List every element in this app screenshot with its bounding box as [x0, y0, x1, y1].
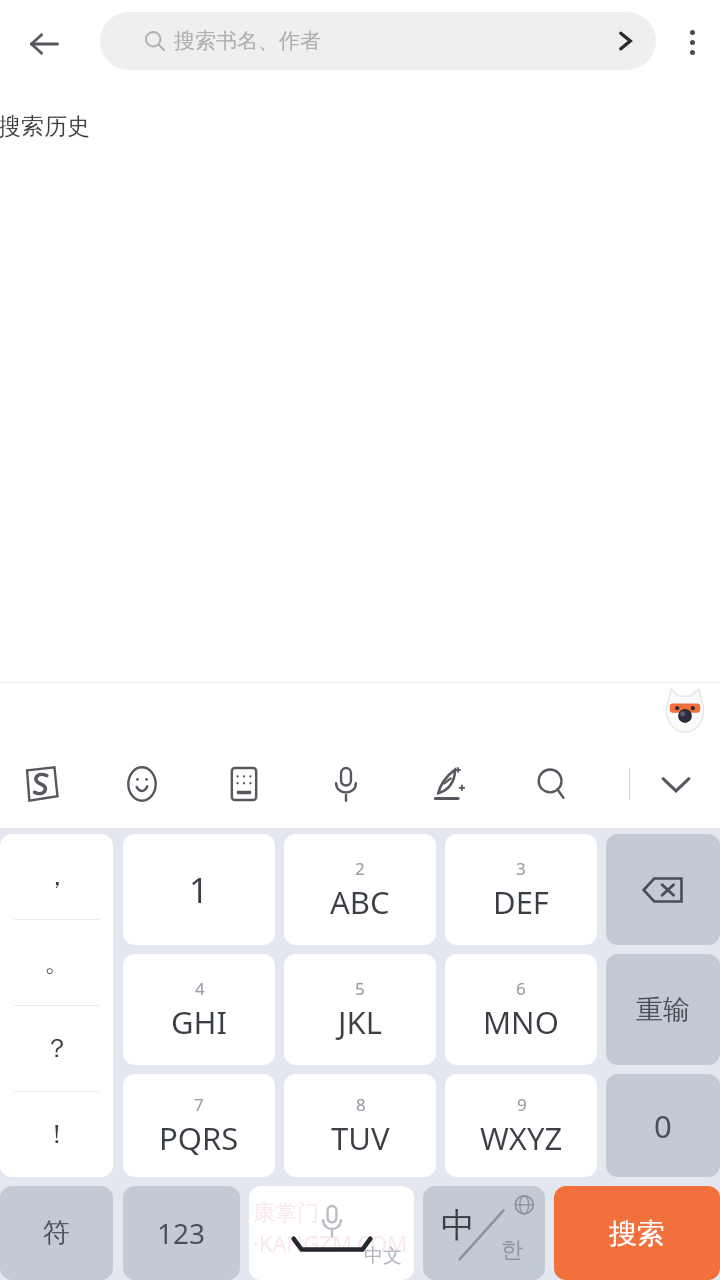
staticText: GHI — [171, 1001, 228, 1043]
button[interactable]: 6 — [445, 954, 597, 1065]
button[interactable]: 重输 — [606, 954, 720, 1065]
button[interactable]: Emoji — [116, 758, 168, 810]
button[interactable]: Handwriting — [423, 758, 475, 810]
staticText: 中文 — [364, 1244, 402, 1268]
staticText: WXYZ — [480, 1117, 563, 1159]
button[interactable]: Voice input — [320, 758, 372, 810]
staticText: ！ — [44, 1118, 70, 1151]
button[interactable]: Keyboard layout — [218, 758, 270, 810]
button[interactable]: Back — [14, 14, 74, 74]
button[interactable]: 1 — [123, 834, 275, 945]
button[interactable]: 123 — [123, 1186, 240, 1280]
staticText: 符 — [43, 1216, 70, 1250]
button[interactable]: 3 — [445, 834, 597, 945]
button[interactable]: 7 — [123, 1074, 275, 1177]
staticText: 中 — [441, 1204, 475, 1247]
staticText: MNO — [483, 1001, 559, 1043]
button[interactable]: Sogou assistant — [662, 687, 708, 733]
button[interactable]: More options — [664, 14, 720, 70]
button[interactable]: 5 — [284, 954, 436, 1065]
button[interactable]: 搜索书名、作者 — [100, 12, 656, 70]
staticText: 8 — [356, 1093, 366, 1116]
staticText: 搜索书名、作者 — [174, 28, 321, 54]
staticText: ？ — [44, 1032, 70, 1065]
staticText: ， — [44, 860, 70, 893]
button[interactable]: 搜索 — [554, 1186, 720, 1280]
staticText: 重输 — [636, 993, 690, 1027]
staticText: 3 — [516, 857, 526, 880]
button[interactable]: Backspace — [606, 834, 720, 945]
button[interactable]: 4 — [123, 954, 275, 1065]
button[interactable]: Hide keyboard — [650, 758, 702, 810]
button[interactable]: 8 — [284, 1074, 436, 1177]
button[interactable]: 0 — [606, 1074, 720, 1177]
button[interactable]: ， — [0, 834, 113, 1177]
staticText: 6 — [516, 977, 526, 1000]
staticText: ABC — [330, 881, 390, 923]
button[interactable]: Switch language — [423, 1186, 545, 1280]
button[interactable]: 9 — [445, 1074, 597, 1177]
button[interactable]: Space — [249, 1186, 414, 1280]
staticText: 康掌门·KANGZM.COM — [253, 1199, 414, 1258]
staticText: TUV — [331, 1117, 390, 1159]
staticText: 7 — [194, 1093, 204, 1116]
staticText: 1 — [189, 867, 209, 913]
button[interactable]: Sogou keyboard — [14, 758, 66, 810]
staticText: 搜索 — [609, 1216, 665, 1251]
staticText: 0 — [654, 1105, 672, 1147]
staticText: JKL — [338, 1001, 382, 1043]
staticText: 4 — [195, 977, 205, 1000]
staticText: 한 — [501, 1236, 523, 1264]
staticText: 9 — [517, 1093, 527, 1116]
button[interactable]: 符 — [0, 1186, 113, 1280]
staticText: 2 — [355, 857, 365, 880]
staticText: 搜索历史 — [0, 112, 90, 141]
staticText: DEF — [493, 881, 549, 923]
staticText: 123 — [157, 1214, 206, 1252]
button[interactable]: Search — [526, 758, 578, 810]
button[interactable]: 2 — [284, 834, 436, 945]
staticText: PQRS — [159, 1117, 239, 1159]
staticText: 5 — [355, 977, 365, 1000]
staticText: 。 — [44, 946, 70, 979]
